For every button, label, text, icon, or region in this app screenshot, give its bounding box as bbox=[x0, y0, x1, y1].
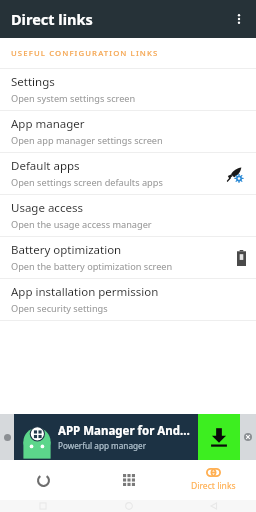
button[interactable]: Close ad bbox=[240, 414, 256, 460]
staticText: Settings bbox=[11, 74, 55, 90]
button[interactable]: All apps bbox=[86, 460, 171, 500]
staticText: Open app manager settings screen bbox=[11, 134, 163, 147]
staticText: Default apps bbox=[11, 158, 80, 174]
button[interactable]: Install bbox=[198, 414, 240, 460]
button[interactable]: Settings bbox=[0, 69, 256, 110]
button[interactable]: App installation permission bbox=[0, 279, 256, 320]
button[interactable]: Battery optimization bbox=[0, 237, 256, 278]
staticText: USEFUL CONFIGURATION LINKS bbox=[11, 48, 159, 59]
button[interactable]: More options bbox=[222, 2, 256, 36]
button[interactable]: Ad information bbox=[0, 414, 14, 460]
staticText: Direct links bbox=[191, 480, 236, 492]
button[interactable]: Running apps bbox=[0, 460, 86, 500]
staticText: Open the battery optimization screen bbox=[11, 260, 173, 273]
staticText: App manager bbox=[11, 116, 85, 132]
button[interactable]: Usage access bbox=[0, 195, 256, 236]
staticText: APP Manager for Android bbox=[58, 423, 194, 439]
button[interactable]: APP Manager for Android bbox=[14, 414, 240, 460]
staticText: Open the usage access manager bbox=[11, 218, 152, 231]
staticText: App installation permission bbox=[11, 284, 159, 300]
staticText: Open system settings screen bbox=[11, 92, 136, 105]
button[interactable]: Default apps bbox=[0, 153, 256, 194]
staticText: Battery optimization bbox=[11, 242, 122, 258]
staticText: Usage access bbox=[11, 200, 83, 216]
staticText: Direct links bbox=[11, 9, 93, 29]
button[interactable]: App manager bbox=[0, 111, 256, 152]
staticText: Open security settings bbox=[11, 302, 108, 315]
staticText: Open settings screen defaults apps bbox=[11, 176, 163, 189]
button[interactable]: Direct links bbox=[171, 460, 256, 500]
staticText: Powerful app manager bbox=[58, 440, 147, 451]
